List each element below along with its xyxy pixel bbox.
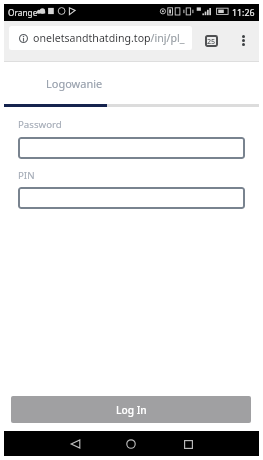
staticText: Orange — [8, 7, 38, 18]
button[interactable]: Back — [64, 433, 86, 455]
staticText: oneletsandthatding.top/inj/pl_ — [33, 31, 185, 45]
button[interactable] — [18, 137, 245, 159]
button[interactable]: Log In — [11, 396, 251, 423]
button[interactable]: More options — [235, 32, 251, 48]
staticText: Password — [18, 118, 62, 131]
button[interactable]: Home — [120, 433, 142, 455]
staticText: Logowanie — [46, 76, 103, 91]
staticText: 11:26 — [232, 7, 255, 19]
button[interactable]: Switch tabs, 25 open — [202, 32, 220, 50]
staticText: PIN — [18, 169, 35, 182]
button[interactable]: Logowanie — [4, 62, 107, 107]
staticText: 25 — [207, 36, 216, 46]
button[interactable]: oneletsandthatding.top/inj/pl_ — [9, 26, 192, 50]
staticText: Log In — [116, 403, 147, 417]
button[interactable]: Recent apps — [177, 433, 199, 455]
button[interactable] — [18, 187, 245, 209]
